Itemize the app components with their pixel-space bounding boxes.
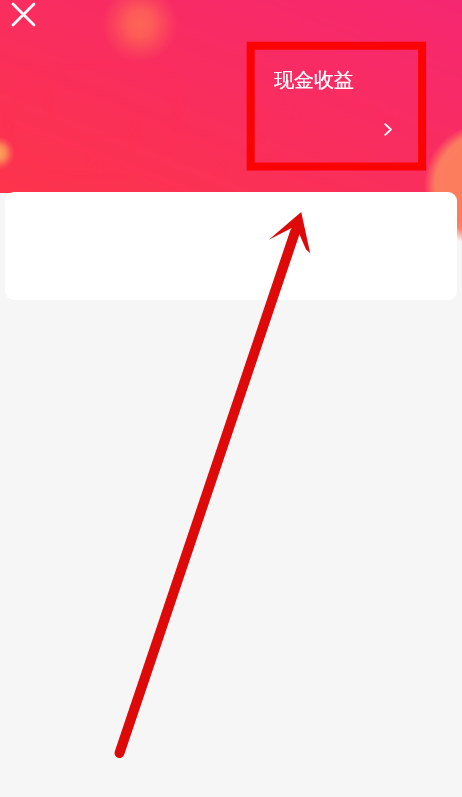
button[interactable]: Close — [3, 0, 43, 34]
staticText: 现金收益 — [274, 68, 354, 93]
button[interactable] — [5, 192, 457, 300]
button[interactable]: 现金收益 — [255, 50, 420, 162]
